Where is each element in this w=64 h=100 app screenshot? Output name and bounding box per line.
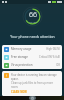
staticText: Clean up junk files to free up more room… xyxy=(11,81,60,89)
staticText: Free storage xyxy=(11,55,28,59)
staticText: CLEAN NOW xyxy=(11,90,27,94)
staticText: of 100 xyxy=(29,20,37,23)
button[interactable]: Free storage xyxy=(2,53,62,61)
button[interactable]: Memory usage xyxy=(2,45,62,53)
staticText: 66 xyxy=(29,10,37,20)
staticText: Virus protection xyxy=(11,63,33,67)
staticText: Your device is running low on storage sp… xyxy=(11,73,60,81)
staticText: Your phone needs attention xyxy=(10,34,55,39)
staticText: Critical (96 % full) xyxy=(39,55,60,59)
button[interactable]: Device health score 66 xyxy=(23,7,42,26)
staticText: Memory usage xyxy=(11,47,32,51)
staticText: OK xyxy=(56,63,60,67)
staticText: High (84 %) xyxy=(46,47,60,51)
button[interactable]: Virus protection xyxy=(2,61,62,69)
button[interactable]: Your device is running low on storage sp… xyxy=(2,71,62,96)
button[interactable]: Home xyxy=(29,96,36,100)
